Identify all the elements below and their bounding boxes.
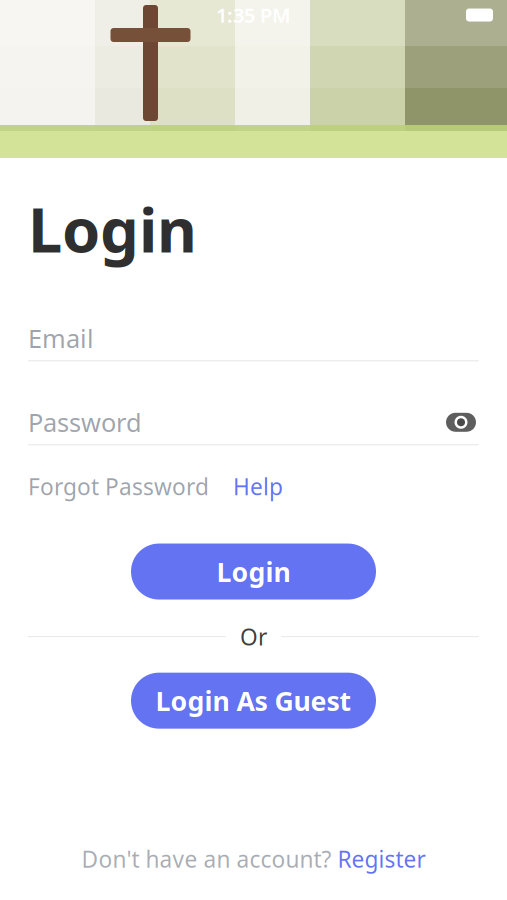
button[interactable]: Login — [131, 543, 376, 599]
staticText: Register — [337, 844, 425, 874]
button[interactable]: Register — [337, 844, 425, 874]
button[interactable]: Show password — [443, 409, 479, 435]
staticText: Forgot Password — [28, 471, 209, 501]
button[interactable]: Forgot Password — [28, 471, 209, 501]
button[interactable]: Help — [233, 471, 283, 501]
staticText: Or — [240, 621, 267, 652]
staticText: Password — [28, 405, 142, 439]
staticText: Login As Guest — [155, 683, 351, 718]
staticText: 1:35 PM — [216, 2, 291, 28]
staticText: Login — [28, 188, 197, 269]
staticText: Email — [28, 321, 94, 355]
button[interactable]: Login As Guest — [131, 673, 376, 729]
staticText: Login — [216, 554, 290, 589]
staticText: Don't have an account? — [81, 844, 331, 874]
staticText: Help — [233, 471, 283, 501]
